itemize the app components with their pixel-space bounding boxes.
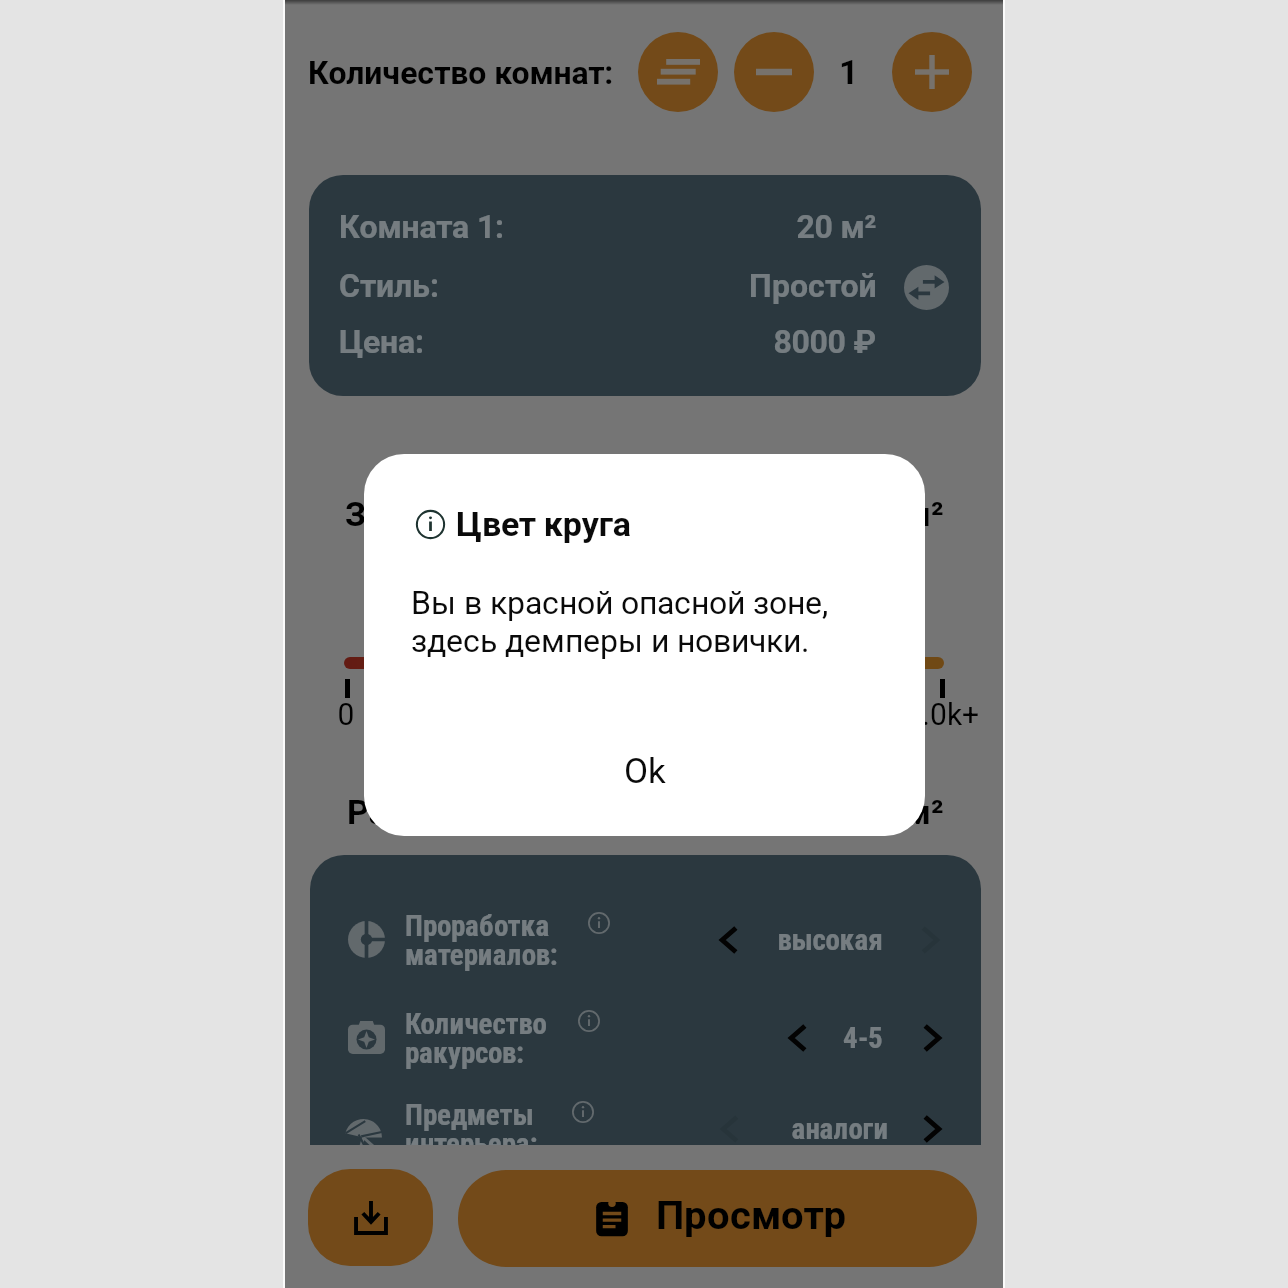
button[interactable]: Next option [914, 1020, 950, 1056]
button[interactable]: Previous option [780, 1020, 816, 1056]
button[interactable]: Ok [603, 742, 687, 798]
button[interactable]: Add room [892, 32, 972, 112]
button[interactable]: Remove room [734, 32, 814, 112]
button[interactable]: More info [572, 1101, 594, 1123]
button[interactable]: Save project [308, 1169, 433, 1266]
button[interactable]: Budget range [344, 657, 944, 669]
button[interactable]: Change style [904, 265, 949, 310]
button[interactable]: Previous option [711, 922, 747, 958]
button[interactable]: More info [578, 1010, 600, 1032]
button[interactable]: More info [588, 912, 610, 934]
button[interactable]: Параметры проекта [310, 855, 981, 1145]
button[interactable]: Next option [914, 1111, 950, 1145]
button[interactable]: Room list [638, 32, 718, 112]
button[interactable]: Комната 1, 20 м², стиль Простой, 8000 ₽ [309, 175, 981, 396]
button[interactable]: Просмотр [458, 1170, 977, 1267]
